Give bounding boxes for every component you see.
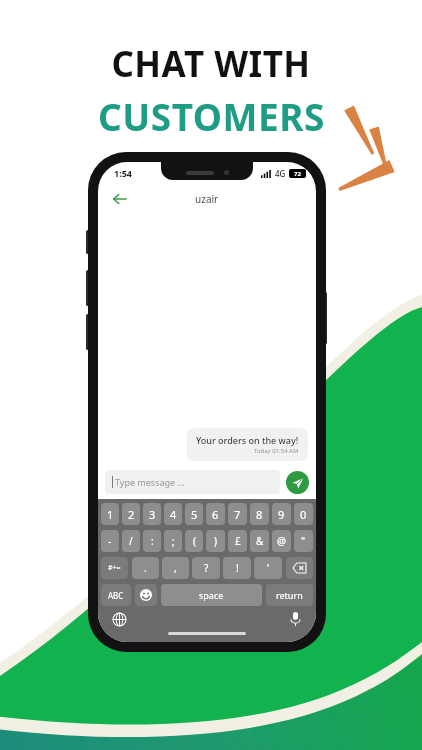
- button[interactable]: ABC: [101, 584, 131, 606]
- staticText: .: [144, 561, 147, 575]
- staticText: return: [276, 589, 303, 601]
- button[interactable]: 2: [122, 503, 140, 525]
- staticText: Today 01:54 AM: [254, 447, 299, 455]
- button[interactable]: ?: [192, 557, 220, 579]
- button[interactable]: -: [101, 530, 119, 552]
- staticText: !: [236, 561, 239, 575]
- staticText: @: [277, 534, 286, 548]
- staticText: 1: [107, 507, 114, 522]
- button[interactable]: #+=: [101, 557, 128, 579]
- staticText: 2: [128, 507, 135, 522]
- staticText: 7: [234, 507, 241, 522]
- staticText: CUSTOMERS: [98, 91, 325, 141]
- staticText: 4G: [275, 168, 286, 179]
- staticText: 6: [212, 507, 219, 522]
- button[interactable]: £: [228, 530, 247, 552]
- button[interactable]: &: [250, 530, 269, 552]
- button[interactable]: Your orders on the way!: [187, 428, 308, 461]
- staticText: 0: [300, 507, 307, 522]
- staticText: 4: [170, 507, 177, 522]
- button[interactable]: 4: [164, 503, 182, 525]
- staticText: :: [151, 534, 154, 548]
- staticText: space: [199, 589, 224, 601]
- staticText: ABC: [108, 590, 124, 601]
- button[interactable]: Voice input: [286, 610, 304, 628]
- button[interactable]: 5: [185, 503, 203, 525]
- staticText: CHAT WITH: [111, 40, 311, 88]
- button[interactable]: 0: [294, 503, 313, 525]
- button[interactable]: Change keyboard language: [110, 610, 128, 628]
- staticText: 9: [278, 507, 285, 522]
- staticText: 8: [256, 507, 263, 522]
- staticText: -: [108, 534, 112, 548]
- staticText: £: [235, 534, 241, 548]
- staticText: Your orders on the way!: [196, 434, 299, 446]
- button[interactable]: :: [143, 530, 161, 552]
- button[interactable]: ,: [162, 557, 189, 579]
- button[interactable]: Backspace: [286, 557, 313, 579]
- button[interactable]: 9: [272, 503, 291, 525]
- button[interactable]: /: [122, 530, 140, 552]
- staticText: 72: [294, 170, 301, 178]
- staticText: &: [256, 534, 264, 548]
- staticText: ?: [204, 561, 209, 575]
- button[interactable]: 3: [143, 503, 161, 525]
- staticText: ;: [172, 534, 175, 548]
- button[interactable]: Emoji: [135, 584, 157, 606]
- button[interactable]: 6: [206, 503, 225, 525]
- button[interactable]: ): [206, 530, 225, 552]
- button[interactable]: space: [161, 584, 262, 606]
- button[interactable]: return: [266, 584, 313, 606]
- staticText: #+=: [108, 563, 121, 573]
- button[interactable]: Type message ...: [105, 470, 280, 494]
- staticText: 5: [191, 507, 198, 522]
- staticText: ,: [174, 561, 177, 575]
- staticText: /: [129, 534, 133, 548]
- staticText: 1:54: [114, 167, 132, 179]
- staticText: (: [193, 534, 196, 548]
- button[interactable]: Send: [286, 471, 309, 494]
- button[interactable]: 8: [250, 503, 269, 525]
- button[interactable]: .: [132, 557, 159, 579]
- button[interactable]: @: [272, 530, 291, 552]
- staticText: ": [301, 534, 306, 548]
- button[interactable]: Back: [106, 186, 132, 212]
- staticText: 3: [149, 507, 156, 522]
- button[interactable]: ;: [164, 530, 182, 552]
- staticText: ): [214, 534, 217, 548]
- staticText: ': [267, 561, 270, 575]
- button[interactable]: ': [254, 557, 282, 579]
- button[interactable]: !: [223, 557, 251, 579]
- staticText: uzair: [195, 192, 219, 206]
- button[interactable]: 1: [101, 503, 119, 525]
- staticText: Type message ...: [115, 476, 185, 488]
- button[interactable]: 7: [228, 503, 247, 525]
- button[interactable]: (: [185, 530, 203, 552]
- button[interactable]: ": [294, 530, 313, 552]
